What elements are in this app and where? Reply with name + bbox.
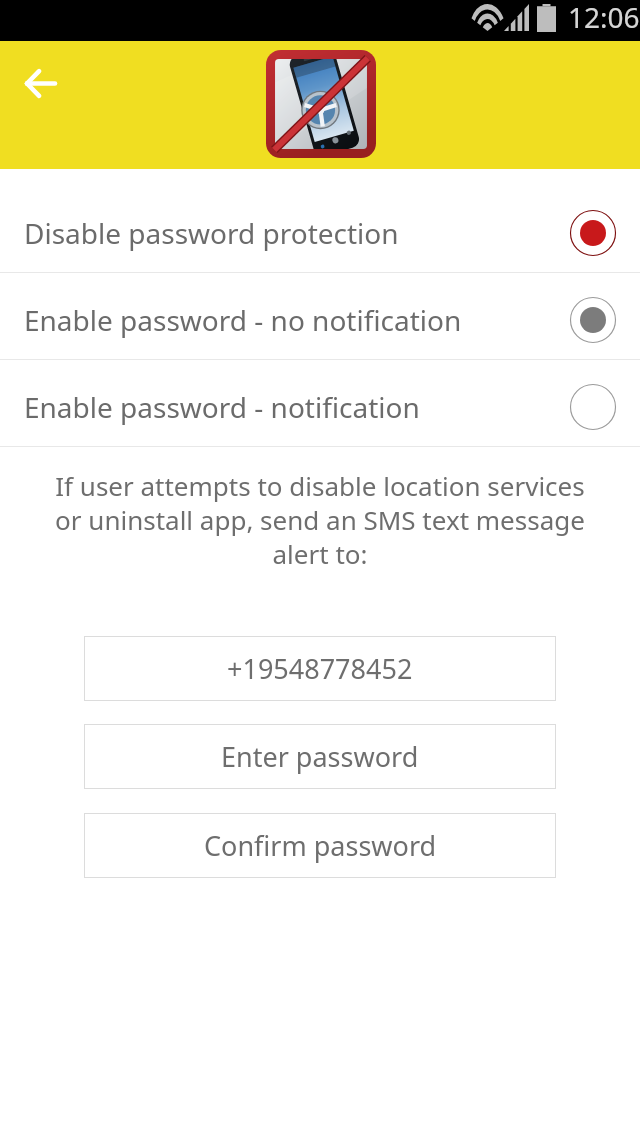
staticText: Confirm password [204, 827, 437, 864]
staticText: +19548778452 [227, 650, 413, 687]
button[interactable]: Enable password - no notification [0, 273, 640, 359]
button[interactable]: +19548778452 [84, 636, 556, 701]
button[interactable]: Disable password protection [0, 186, 640, 272]
button[interactable]: Confirm password [84, 813, 556, 878]
button[interactable]: Enter password [84, 724, 556, 789]
staticText: 12:06 [568, 0, 640, 35]
staticText: Enter password [221, 738, 419, 775]
button[interactable]: Back [7, 50, 73, 116]
staticText: Disable password protection [24, 214, 569, 252]
staticText: If user attempts to disable location ser… [50, 468, 590, 571]
staticText: Enable password - notification [24, 388, 569, 426]
staticText: Enable password - no notification [24, 301, 569, 339]
button[interactable]: Enable password - notification [0, 360, 640, 446]
